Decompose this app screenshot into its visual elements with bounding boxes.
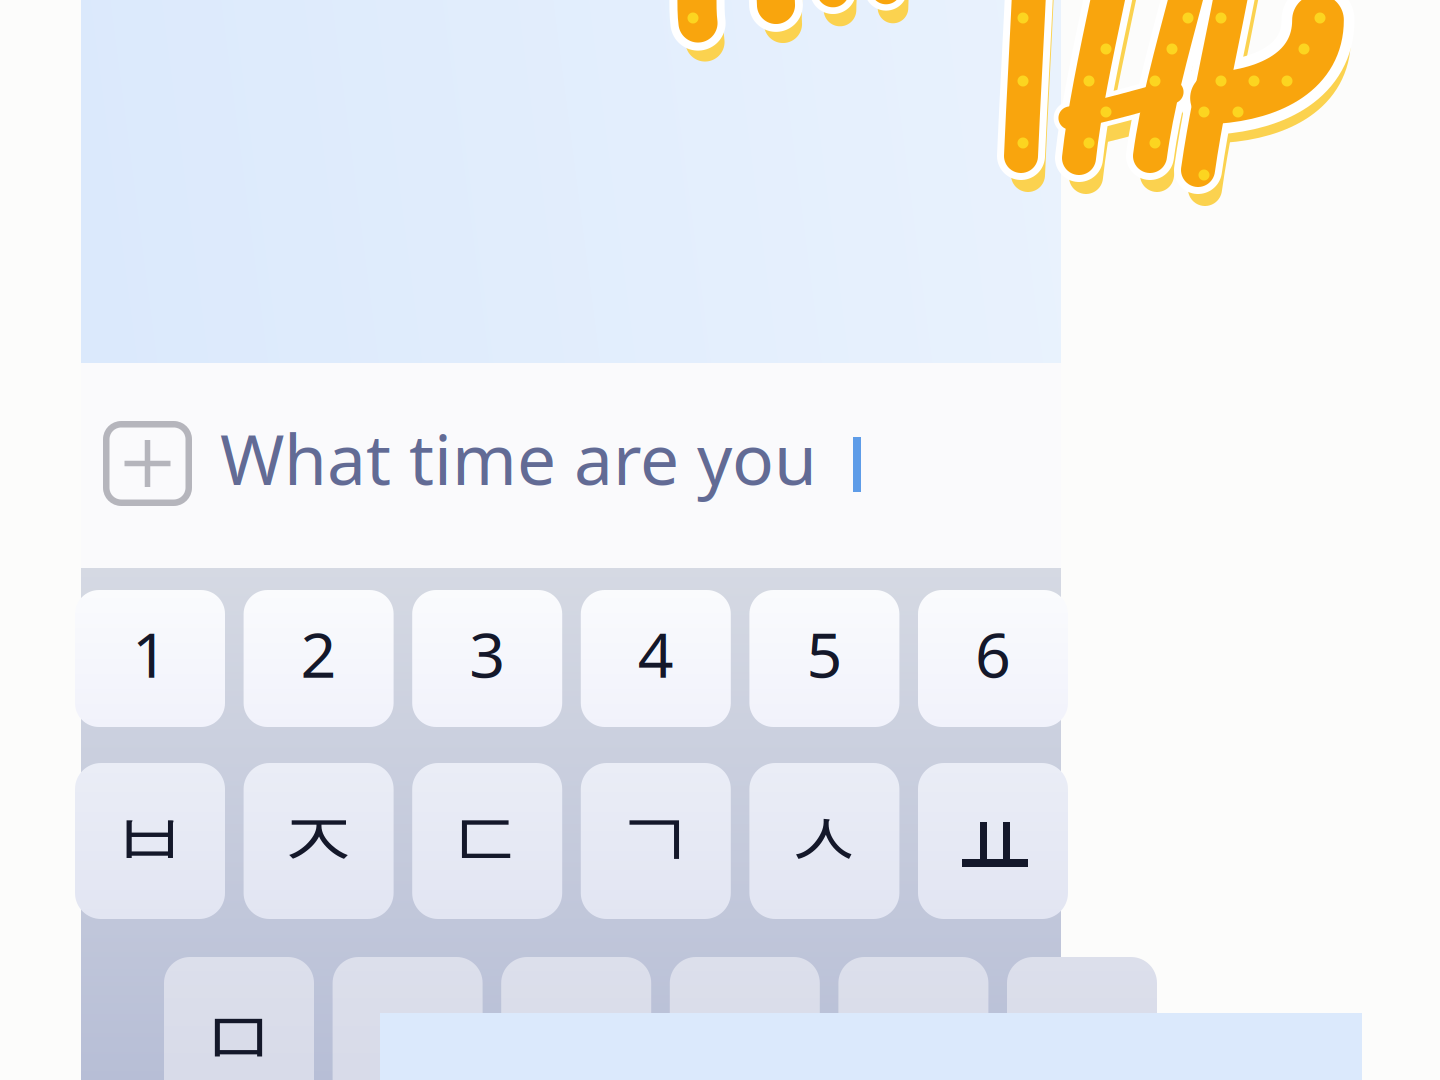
- staticText: What time are you: [220, 412, 817, 504]
- button[interactable]: 2: [244, 590, 394, 727]
- button[interactable]: 1: [75, 590, 225, 727]
- button[interactable]: [918, 763, 1068, 919]
- staticText: ㅈ: [279, 792, 359, 890]
- button[interactable]: 4: [581, 590, 731, 727]
- button[interactable]: [501, 957, 651, 1080]
- staticText: ㅂ: [110, 792, 190, 890]
- staticText: 4: [638, 612, 674, 695]
- staticText: 6: [975, 612, 1011, 695]
- button[interactable]: 3: [412, 590, 562, 727]
- button[interactable]: [670, 957, 820, 1080]
- button[interactable]: [1007, 957, 1157, 1080]
- staticText: ㅅ: [784, 792, 864, 890]
- button[interactable]: ㄱ: [581, 763, 731, 919]
- staticText: 5: [806, 612, 842, 695]
- button[interactable]: 5: [749, 590, 899, 727]
- button[interactable]: [333, 957, 483, 1080]
- button[interactable]: ㅂ: [75, 763, 225, 919]
- button[interactable]: ㅈ: [244, 763, 394, 919]
- button[interactable]: ㅁ: [164, 957, 314, 1080]
- button[interactable]: [838, 957, 988, 1080]
- staticText: ㅁ: [199, 990, 279, 1080]
- staticText: ㄱ: [616, 792, 696, 890]
- staticText: 1: [132, 612, 168, 695]
- button[interactable]: ㄷ: [412, 763, 562, 919]
- button[interactable]: Add attachment: [103, 421, 192, 506]
- staticText: 2: [301, 612, 337, 695]
- staticText: 3: [469, 612, 505, 695]
- staticText: ㄷ: [447, 792, 527, 890]
- button[interactable]: ㅅ: [749, 763, 899, 919]
- button[interactable]: 6: [918, 590, 1068, 727]
